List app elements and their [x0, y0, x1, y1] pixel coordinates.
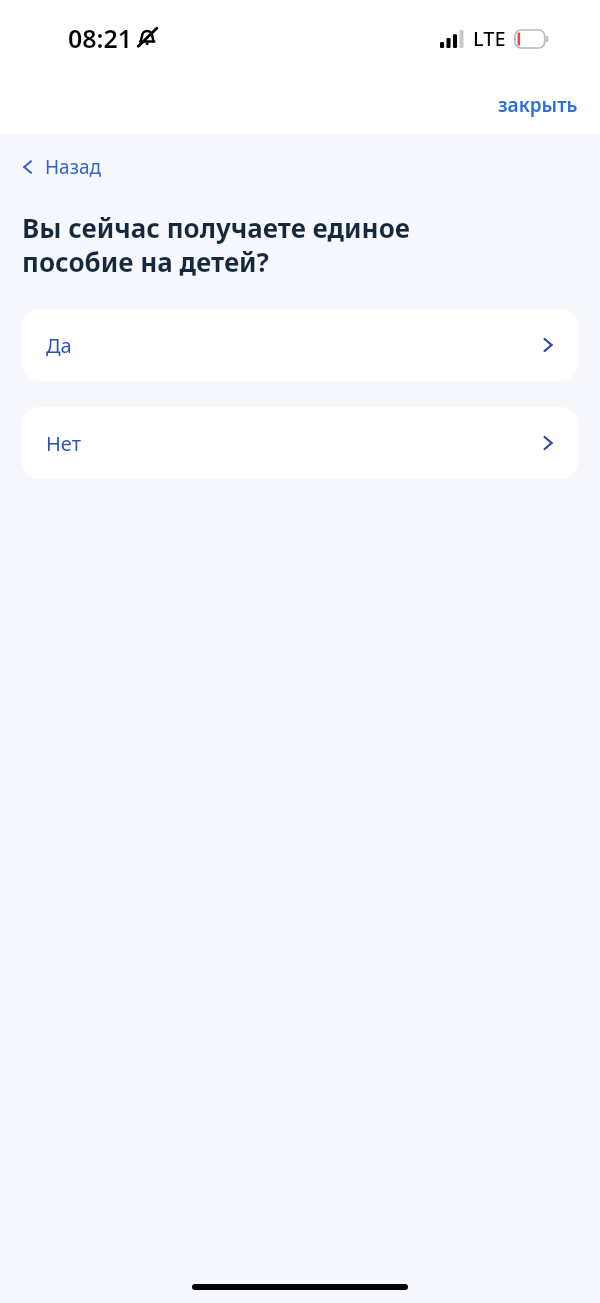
button[interactable]: Назад [12, 146, 116, 188]
staticText: 08:21 [68, 21, 133, 55]
button[interactable]: Нет [22, 407, 578, 479]
staticText: Да [46, 332, 72, 359]
staticText: Вы сейчас получаете единое пособие на де… [22, 210, 410, 279]
staticText: Назад [45, 154, 102, 180]
staticText: закрыть [498, 92, 578, 118]
staticText: Нет [46, 430, 81, 457]
staticText: LTE [473, 25, 506, 52]
button[interactable]: закрыть [486, 86, 590, 124]
button[interactable]: Да [22, 309, 578, 381]
